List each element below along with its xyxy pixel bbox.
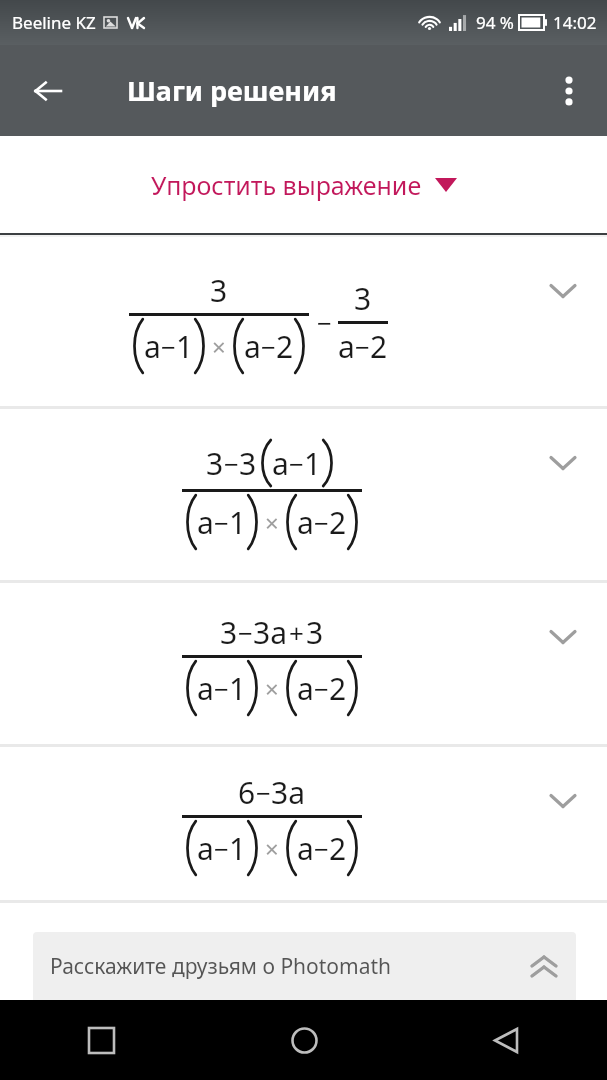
staticText: Beeline KZ	[12, 11, 96, 34]
staticText: −	[214, 831, 229, 866]
staticText: −	[214, 505, 229, 540]
staticText: +	[289, 615, 304, 650]
staticText: 2	[329, 502, 347, 543]
staticText: −	[289, 446, 304, 481]
staticText: a	[297, 502, 314, 543]
staticText: −	[256, 775, 271, 810]
staticText: ×	[265, 506, 279, 539]
staticText: a	[144, 326, 161, 367]
button[interactable]: 6	[0, 747, 607, 900]
button[interactable]: Расскажите друзьям о Photomath	[33, 932, 576, 1000]
staticText: −	[314, 831, 329, 866]
staticText: a	[272, 443, 289, 484]
button[interactable]: Back	[24, 67, 72, 115]
staticText: 2	[276, 326, 294, 367]
staticText: 14:02	[553, 11, 597, 34]
staticText: a	[244, 326, 261, 367]
other: Expand step	[545, 445, 581, 481]
staticText: Расскажите друзьям о Photomath	[50, 952, 392, 981]
staticText: 94 %	[476, 11, 514, 34]
staticText: 3	[210, 270, 228, 311]
staticText: Шаги решения	[127, 72, 337, 109]
staticText: 3	[220, 612, 238, 653]
staticText: a	[197, 828, 214, 869]
staticText: −	[238, 615, 253, 650]
staticText: 3a	[271, 772, 305, 813]
staticText: −	[261, 329, 276, 364]
staticText: 1	[304, 443, 322, 484]
staticText: 3	[354, 278, 372, 319]
button[interactable]: Recent apps	[0, 1000, 203, 1080]
staticText: 6	[238, 772, 256, 813]
staticText: 3	[239, 443, 257, 484]
staticText: a	[197, 668, 214, 709]
staticText: 1	[229, 668, 247, 709]
staticText: 1	[229, 828, 247, 869]
staticText: Упростить выражение	[151, 168, 422, 202]
staticText: 1	[229, 502, 247, 543]
staticText: ×	[265, 832, 279, 865]
staticText: −	[214, 671, 229, 706]
staticText: −	[224, 446, 239, 481]
staticText: −	[355, 329, 370, 364]
button[interactable]: 3	[0, 583, 607, 744]
button[interactable]: Back	[405, 1000, 607, 1080]
staticText: a	[297, 828, 314, 869]
staticText: a	[197, 502, 214, 543]
staticText: 3	[206, 443, 224, 484]
staticText: −	[161, 329, 176, 364]
staticText: −	[314, 671, 329, 706]
other: Expand step	[545, 619, 581, 655]
button[interactable]: More options	[545, 67, 593, 115]
staticText: a	[297, 668, 314, 709]
staticText: 2	[329, 828, 347, 869]
staticText: 3a	[253, 612, 287, 653]
staticText: −	[317, 305, 332, 340]
other: Expand step	[545, 273, 581, 309]
staticText: ×	[265, 672, 279, 705]
staticText: 2	[329, 668, 347, 709]
staticText: ×	[212, 330, 226, 363]
staticText: 1	[176, 326, 194, 367]
other: Expand step	[545, 783, 581, 819]
staticText: 3	[306, 612, 324, 653]
button[interactable]: Упростить выражение	[0, 136, 607, 233]
staticText: −	[314, 505, 329, 540]
staticText: a	[338, 326, 355, 367]
button[interactable]: 3	[0, 409, 607, 580]
button[interactable]: 3	[0, 237, 607, 406]
button[interactable]: Home	[203, 1000, 405, 1080]
staticText: 2	[370, 326, 388, 367]
